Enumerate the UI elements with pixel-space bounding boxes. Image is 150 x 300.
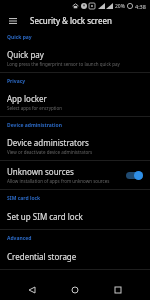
- staticText: SIM card lock: [7, 195, 41, 202]
- staticText: Allow installation of apps from unknown …: [7, 178, 110, 184]
- button[interactable]: Recent apps: [107, 280, 129, 300]
- staticText: View or deactivate device administrators: [7, 149, 93, 155]
- staticText: Select apps for encryption: [7, 105, 63, 111]
- staticText: 20%: [115, 3, 125, 10]
- staticText: Quick pay: [7, 49, 44, 60]
- button[interactable]: Back: [21, 280, 43, 300]
- staticText: Privacy: [7, 78, 26, 85]
- staticText: Device administrators: [7, 137, 89, 148]
- button[interactable]: Set up SIM card lock: [0, 206, 150, 229]
- staticText: Device administration: [7, 122, 62, 129]
- button[interactable]: Credential storage: [0, 246, 150, 269]
- button[interactable]: Device administrators: [0, 133, 150, 160]
- staticText: Long press the fingerprint sensor to lau…: [7, 61, 120, 67]
- staticText: Credential storage: [7, 251, 77, 262]
- staticText: 4:38: [135, 3, 146, 10]
- button[interactable]: Home: [64, 280, 86, 300]
- staticText: Set up SIM card lock: [7, 211, 83, 222]
- button[interactable]: Unknown sources: [0, 161, 150, 189]
- button[interactable]: Unknown sources toggle: [125, 170, 143, 180]
- staticText: Unknown sources: [7, 166, 74, 177]
- staticText: Quick pay: [7, 34, 32, 41]
- staticText: App locker: [7, 93, 47, 104]
- button[interactable]: Menu: [6, 14, 20, 28]
- staticText: Advanced: [7, 235, 32, 242]
- staticText: Security & lock screen: [30, 15, 112, 26]
- button[interactable]: Quick pay: [0, 45, 150, 72]
- button[interactable]: App locker: [0, 89, 150, 116]
